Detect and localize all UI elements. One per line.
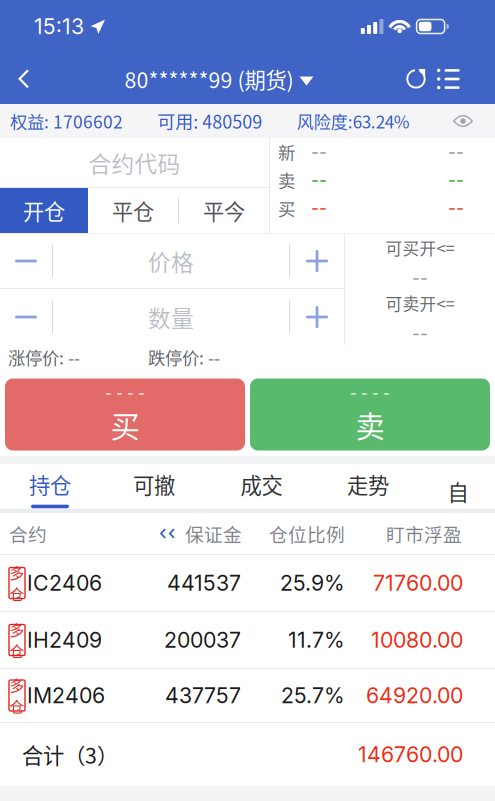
staticText: 走势 — [347, 469, 389, 500]
button[interactable]: 走势 — [315, 464, 421, 509]
staticText: IC2406 — [27, 570, 102, 596]
button[interactable]: Decrease — [0, 289, 52, 345]
staticText: - - - - — [105, 384, 145, 402]
staticText: 25.7% — [281, 683, 345, 708]
staticText: 11.7% — [288, 627, 345, 653]
staticText: 多 — [9, 619, 24, 640]
staticText: 仓 — [9, 583, 24, 604]
staticText: -- — [311, 169, 327, 190]
staticText: - - - - — [350, 384, 390, 402]
staticText: 价格 — [148, 245, 194, 277]
staticText: 10080.00 — [371, 627, 463, 653]
staticText: -- — [412, 323, 428, 344]
staticText: 买 — [278, 195, 295, 221]
staticText: -- — [448, 197, 464, 218]
button[interactable]: Decrease — [0, 234, 52, 288]
staticText: 开仓 — [23, 195, 65, 226]
button[interactable]: - - - - — [250, 378, 490, 450]
staticText: 437757 — [165, 683, 241, 708]
staticText: 多 — [9, 562, 24, 583]
staticText: 卖 — [355, 403, 384, 446]
button[interactable]: Increase — [290, 289, 344, 345]
staticText: 441537 — [167, 570, 241, 596]
staticText: 25.9% — [280, 570, 345, 596]
staticText: 可撤 — [133, 469, 175, 500]
staticText: 71760.00 — [373, 570, 463, 596]
staticText: 仓位比例 — [269, 520, 345, 547]
staticText: 200037 — [164, 627, 241, 653]
button[interactable]: 持仓 — [0, 464, 100, 509]
button[interactable]: 成交 — [208, 464, 315, 509]
staticText: -- — [311, 141, 327, 162]
staticText: 146760.00 — [358, 742, 463, 767]
button[interactable]: 开仓 — [0, 188, 88, 233]
staticText: 仓 — [9, 640, 24, 661]
button[interactable]: Refresh — [395, 54, 437, 104]
staticText: -- — [448, 169, 464, 190]
staticText: 跌停价: -- — [148, 344, 220, 370]
staticText: 80******99 (期货) — [124, 64, 293, 94]
staticText: 64920.00 — [366, 683, 463, 708]
staticText: 卖 — [278, 167, 295, 193]
staticText: -- — [448, 141, 464, 162]
staticText: 权益: 1706602 — [10, 108, 123, 134]
staticText: 可买开<= — [385, 235, 454, 259]
button[interactable]: 平今 — [179, 188, 269, 233]
staticText: 可用: 480509 — [157, 108, 262, 134]
staticText: 合计（3） — [22, 739, 118, 770]
staticText: 盯市浮盈 — [386, 520, 462, 547]
button[interactable]: Menu — [437, 54, 466, 104]
staticText: 15:13 — [34, 14, 84, 39]
staticText: 成交 — [240, 469, 282, 500]
button[interactable]: 80******99 (期货) — [124, 54, 313, 104]
button[interactable]: 平仓 — [88, 188, 178, 233]
button[interactable]: 可撤 — [100, 464, 208, 509]
staticText: 保证金 — [185, 520, 242, 547]
staticText: 平今 — [203, 195, 245, 226]
staticText: IM2406 — [27, 683, 105, 708]
button[interactable]: 多 — [0, 555, 495, 611]
button[interactable]: - - - - — [5, 378, 245, 450]
staticText: 合约代码 — [88, 146, 180, 179]
button[interactable]: Back — [5, 54, 43, 104]
button[interactable]: 多 — [0, 669, 495, 722]
button[interactable]: 自 — [421, 464, 495, 509]
staticText: 自 — [447, 476, 468, 507]
staticText: 平仓 — [112, 195, 154, 226]
staticText: 合约 — [9, 520, 47, 547]
button[interactable]: 多 — [0, 612, 495, 668]
button[interactable]: Toggle balance visibility — [444, 104, 482, 138]
staticText: 数量 — [148, 301, 194, 333]
staticText: IH2409 — [27, 627, 102, 653]
staticText: 仓 — [9, 695, 24, 717]
staticText: 多 — [9, 674, 24, 695]
staticText: 风险度:63.24% — [297, 109, 410, 133]
button[interactable]: Increase — [290, 234, 344, 288]
staticText: 可卖开<= — [385, 291, 454, 315]
staticText: 涨停价: -- — [8, 344, 80, 370]
staticText: 持仓 — [29, 469, 71, 500]
staticText: 买 — [110, 403, 139, 446]
staticText: -- — [412, 268, 428, 289]
staticText: 新 — [278, 139, 295, 165]
staticText: -- — [311, 197, 327, 218]
